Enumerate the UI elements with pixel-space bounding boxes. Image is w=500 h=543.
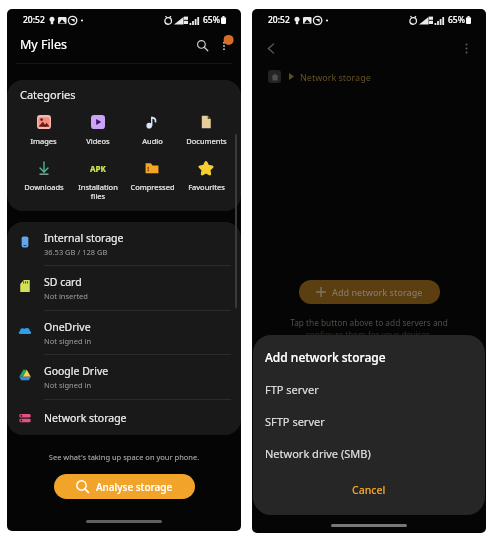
button[interactable]: More options [213, 34, 235, 56]
staticText: FTP server [265, 382, 319, 397]
staticText: Google Drive [44, 364, 109, 378]
button[interactable]: OneDrive [7, 311, 241, 354]
staticText: 36.53 GB / 128 GB [44, 247, 108, 257]
staticText: Tap the button above to add servers and [252, 317, 486, 328]
staticText: Documents [186, 136, 227, 146]
staticText: Not signed in [44, 336, 92, 346]
button[interactable]: Videos [71, 115, 125, 146]
staticText: Categories [20, 87, 76, 102]
staticText: SFTP server [265, 414, 325, 429]
button[interactable]: Network drive (SMB) [253, 439, 485, 467]
button[interactable]: SFTP server [253, 407, 485, 435]
button[interactable]: Search [191, 34, 213, 56]
staticText: Internal storage [44, 231, 124, 245]
staticText: configure them for your devices. [252, 329, 486, 340]
button[interactable]: Images [16, 115, 71, 146]
staticText: Images [30, 136, 57, 146]
button[interactable]: Internal storage [7, 222, 241, 265]
staticText: 65% [448, 14, 465, 26]
button[interactable]: APK [71, 161, 125, 201]
button[interactable]: Network storage [300, 71, 371, 83]
staticText: APK [90, 163, 106, 174]
staticText: Installation files [78, 182, 118, 201]
button[interactable]: Analyse storage [54, 474, 195, 499]
button[interactable]: Home [268, 70, 281, 83]
staticText: OneDrive [44, 320, 91, 334]
staticText: 65% [203, 14, 220, 26]
staticText: SD card [44, 275, 82, 289]
button[interactable]: Documents [179, 115, 233, 146]
button[interactable]: Back [260, 37, 282, 59]
button[interactable]: SD card [7, 266, 241, 310]
staticText: Videos [86, 136, 110, 146]
staticText: Not inserted [44, 291, 88, 301]
button[interactable]: Add network storage [299, 280, 440, 304]
staticText: Not signed in [44, 380, 92, 390]
staticText: Favourites [188, 182, 225, 192]
button[interactable]: Favourites [179, 161, 233, 192]
staticText: Add network storage [332, 286, 423, 298]
staticText: Add network storage [265, 349, 386, 365]
staticText: Network storage [44, 411, 127, 425]
staticText: Network drive (SMB) [265, 446, 371, 461]
staticText: My Files [20, 36, 67, 53]
staticText: Analyse storage [96, 480, 173, 494]
staticText: 20:52 [268, 14, 290, 26]
button[interactable]: Downloads [16, 161, 71, 192]
staticText: Cancel [352, 483, 386, 497]
staticText: Compressed [130, 182, 175, 192]
button[interactable]: Network storage [7, 400, 241, 435]
button[interactable]: Cancel [336, 478, 402, 502]
button[interactable]: Google Drive [7, 355, 241, 399]
staticText: Network storage [300, 71, 371, 83]
staticText: Downloads [24, 182, 64, 192]
button[interactable]: Compressed [125, 161, 179, 192]
staticText: Audio [142, 136, 163, 146]
button[interactable]: More options [455, 37, 477, 59]
staticText: 20:52 [23, 14, 45, 26]
staticText: See what's taking up space on your phone… [7, 452, 241, 462]
button[interactable]: FTP server [253, 375, 485, 403]
button[interactable]: Audio [125, 115, 179, 146]
